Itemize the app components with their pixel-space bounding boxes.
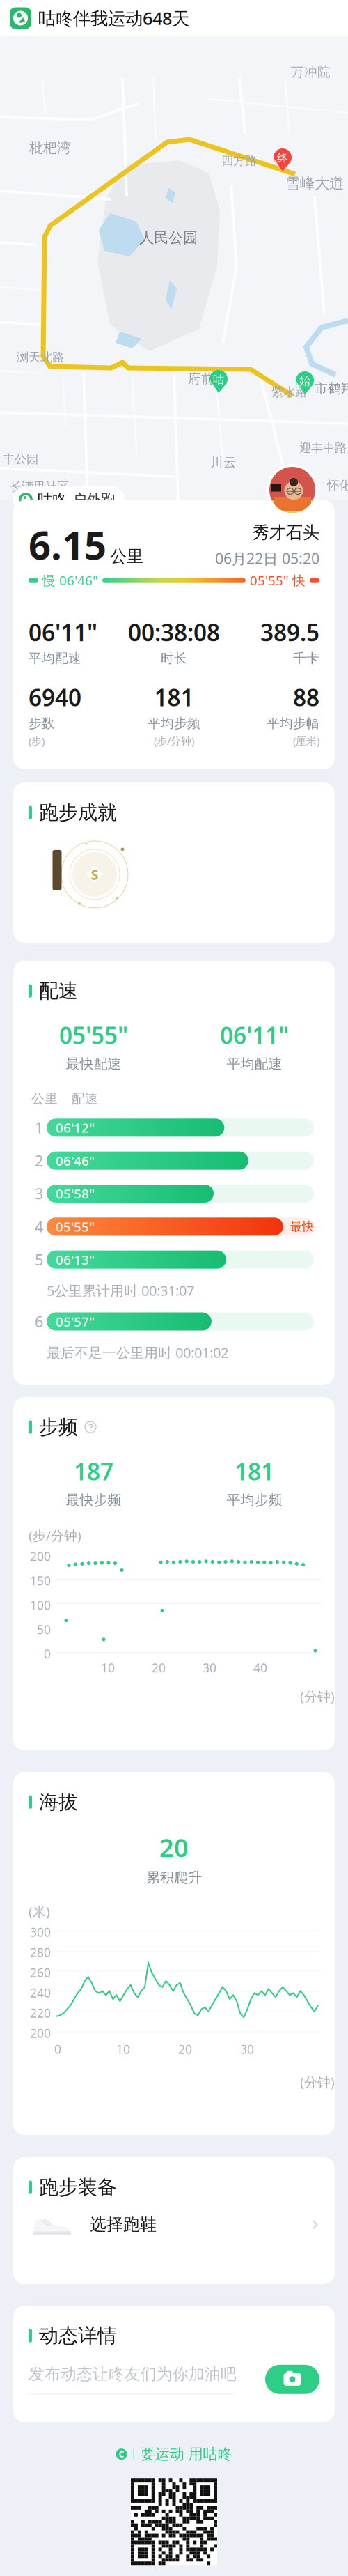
staticText: 2 — [35, 1151, 43, 1170]
staticText: 公里 — [31, 1091, 58, 1107]
staticText: 怀化大道 — [327, 478, 348, 493]
staticText: 50 — [37, 1621, 51, 1637]
staticText: 150 — [30, 1573, 51, 1589]
staticText: 最快配速 — [66, 1055, 121, 1073]
staticText: 浏天北路 — [17, 350, 64, 365]
staticText: 枇杷湾 — [29, 139, 71, 156]
staticText: 05'55" — [59, 1020, 128, 1051]
staticText: 平均步频 — [148, 715, 200, 731]
staticText: 累积爬升 — [146, 1869, 202, 1886]
staticText: S — [91, 865, 98, 884]
staticText: 200 — [30, 1548, 51, 1564]
staticText: 配速 — [39, 979, 78, 1003]
staticText: ? — [88, 1420, 93, 1434]
staticText: 389.5 — [260, 617, 319, 648]
staticText: 88 — [293, 682, 319, 713]
staticText: 府前路 — [188, 371, 228, 387]
staticText: 05'57" — [56, 1313, 95, 1330]
staticText: 万冲院 — [291, 64, 331, 80]
staticText: 千卡 — [293, 650, 319, 666]
staticText: 05'55" 快 — [250, 572, 306, 589]
staticText: 181 — [154, 682, 194, 713]
staticText: C — [119, 2449, 124, 2460]
staticText: 00:38:08 — [128, 617, 220, 648]
staticText: 咕 — [213, 373, 224, 387]
staticText: 时长 — [161, 650, 187, 666]
staticText: 咕咚伴我运动648天 — [38, 6, 189, 30]
staticText: 秀才石头 — [253, 522, 319, 543]
staticText: 终 — [277, 151, 288, 165]
staticText: 要运动 用咕咚 — [140, 2445, 232, 2463]
staticText: 慢 06'46" — [42, 572, 98, 589]
staticText: 选择跑鞋 — [90, 2214, 157, 2235]
staticText: 06'13" — [56, 1251, 95, 1268]
staticText: 20 — [178, 2041, 192, 2057]
staticText: 迎丰中路 — [299, 440, 347, 455]
staticText: (厘米) — [293, 734, 319, 748]
staticText: 260 — [30, 1965, 51, 1981]
staticText: 步数 — [29, 715, 55, 731]
staticText: 跑步成就 — [39, 801, 117, 825]
staticText: 0 — [54, 2041, 61, 2057]
staticText: (步) — [29, 734, 45, 748]
staticText: 05'58" — [56, 1185, 95, 1202]
staticText: 30 — [240, 2041, 254, 2057]
staticText: 发布动态让咚友们为你加油吧 — [29, 2364, 237, 2384]
staticText: 06'12" — [56, 1119, 95, 1136]
staticText: 0 — [44, 1646, 51, 1662]
staticText: 动态详情 — [39, 2324, 117, 2348]
staticText: 06月22日 05:20 — [215, 548, 319, 568]
staticText: (米) — [29, 1903, 50, 1920]
staticText: 06'11" — [220, 1020, 289, 1051]
button[interactable]: 发布动态照片 — [265, 2365, 319, 2394]
staticText: (步/分钟) — [29, 1527, 81, 1544]
staticText: 187 — [74, 1456, 113, 1487]
staticText: 最后不足一公里用时 00:01:02 — [47, 1343, 228, 1362]
staticText: 300 — [30, 1924, 51, 1940]
staticText: 10 — [116, 2041, 130, 2057]
staticText: 4 — [35, 1217, 43, 1236]
staticText: 06'11" — [29, 617, 97, 648]
staticText: 240 — [30, 1985, 51, 2001]
staticText: 公里 — [110, 546, 143, 567]
staticText: 6940 — [29, 682, 81, 713]
staticText: 3 — [35, 1184, 43, 1203]
staticText: 川云 — [210, 454, 237, 470]
staticText: 平均配速 — [29, 650, 81, 666]
staticText: 配速 — [72, 1091, 98, 1107]
staticText: 紫水路 — [271, 385, 307, 399]
staticText: 280 — [30, 1944, 51, 1960]
staticText: 30 — [203, 1660, 216, 1676]
staticText: 220 — [30, 2005, 51, 2021]
staticText: 平均配速 — [227, 1055, 282, 1073]
staticText: 1 — [35, 1118, 43, 1137]
staticText: 海拔 — [39, 1790, 78, 1814]
staticText: 最快步频 — [66, 1492, 121, 1509]
staticText: 5公里累计用时 00:31:07 — [47, 1281, 194, 1300]
staticText: 户外跑 — [72, 491, 116, 509]
staticText: 最快 — [290, 1219, 314, 1234]
staticText: 10 — [101, 1660, 115, 1676]
staticText: 步频 — [39, 1415, 78, 1439]
staticText: 20 — [159, 1831, 189, 1864]
staticText: 雪峰大道 — [285, 174, 344, 192]
staticText: 5 — [35, 1250, 43, 1269]
staticText: 咕咚 — [38, 491, 67, 509]
staticText: 05'55" — [56, 1218, 95, 1235]
staticText: 长湾里社区 — [10, 479, 69, 494]
button[interactable]: 选择跑鞋 — [13, 2199, 335, 2249]
staticText: 市鹤翔 — [315, 380, 348, 396]
staticText: 平均步频 — [227, 1492, 282, 1509]
staticText: 100 — [30, 1597, 51, 1613]
staticText: 人民公园 — [139, 229, 198, 247]
staticText: 40 — [253, 1660, 267, 1676]
staticText: 181 — [235, 1456, 274, 1487]
staticText: (分钟) — [300, 2073, 335, 2091]
staticText: 200 — [30, 2025, 51, 2041]
staticText: (步/分钟) — [154, 734, 194, 748]
staticText: 平均步幅 — [267, 715, 319, 731]
staticText: 06'46" — [56, 1152, 95, 1169]
staticText: 6 — [35, 1312, 43, 1331]
staticText: 四方路 — [221, 153, 257, 168]
staticText: 丰公园 — [3, 452, 38, 466]
